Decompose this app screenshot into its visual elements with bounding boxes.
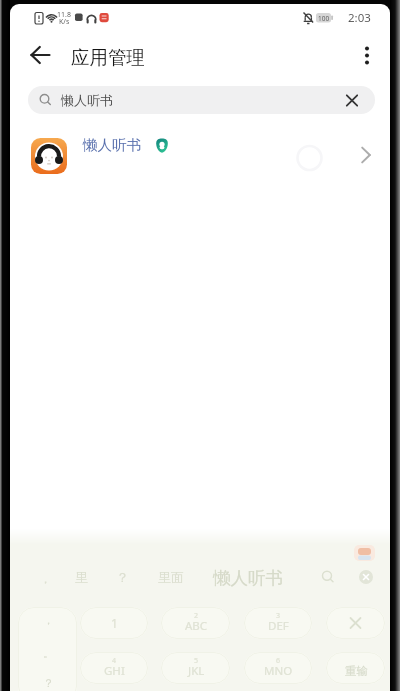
staticText: 11.8 (57, 10, 71, 20)
staticText: 应用管理 (71, 46, 145, 69)
staticText: JKL (188, 663, 205, 679)
staticText: ABC (185, 618, 208, 634)
button[interactable] (24, 42, 60, 72)
staticText: 4 (112, 656, 117, 666)
button[interactable] (20, 130, 380, 186)
staticText: ， (43, 613, 54, 627)
staticText: 6 (276, 656, 281, 666)
button[interactable] (244, 607, 312, 639)
staticText: K/s (59, 17, 70, 27)
staticText: 重输 (345, 664, 368, 678)
button[interactable] (326, 652, 385, 684)
staticText: ， (40, 572, 51, 586)
button[interactable] (161, 607, 230, 639)
button[interactable] (340, 88, 366, 112)
button[interactable] (28, 86, 375, 114)
staticText: 懒人听书 (213, 567, 283, 589)
staticText: 2 (194, 611, 199, 621)
button[interactable] (80, 652, 148, 684)
staticText: 。 (43, 646, 54, 660)
button[interactable] (244, 652, 312, 684)
staticText: 5 (194, 656, 199, 666)
staticText: ？ (43, 676, 54, 690)
staticText: MNO (264, 663, 293, 679)
staticText: 100 (318, 14, 330, 23)
staticText: 1 (111, 615, 118, 631)
staticText: 里 (75, 569, 88, 585)
staticText: 里面 (158, 569, 184, 585)
staticText: GHI (104, 663, 125, 679)
staticText: 2:03 (348, 10, 371, 26)
button[interactable] (353, 42, 383, 72)
staticText: DEF (268, 618, 289, 634)
button[interactable] (326, 607, 385, 639)
staticText: 懒人听书 (61, 92, 113, 108)
staticText: ？ (116, 569, 129, 585)
staticText: 3 (276, 611, 281, 621)
staticText: 懒人听书 (83, 136, 141, 154)
button[interactable] (80, 607, 148, 639)
button[interactable] (161, 652, 230, 684)
